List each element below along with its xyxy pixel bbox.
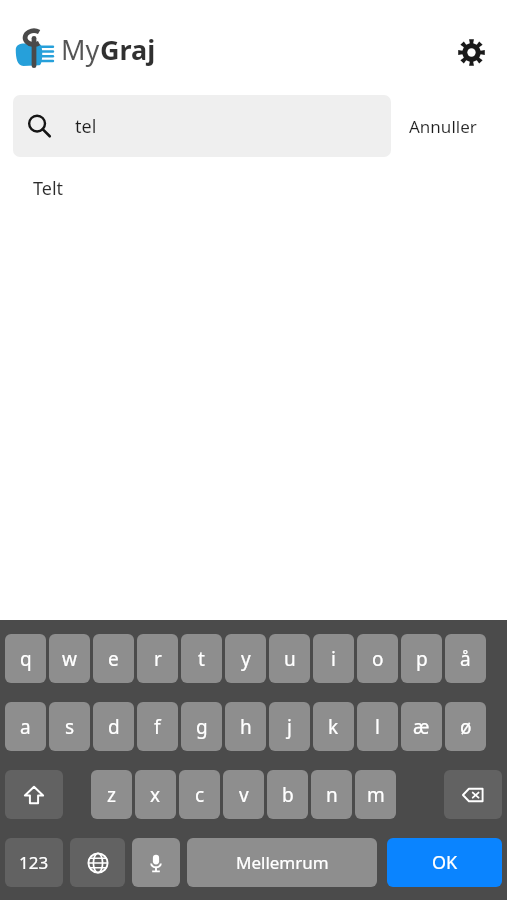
staticText: My [61,31,100,68]
staticText: b [282,782,294,808]
staticText: j [287,714,292,740]
staticText: 123 [19,851,49,874]
button[interactable]: g [181,702,222,751]
button[interactable]: d [93,702,134,751]
staticText: e [108,646,119,672]
staticText: u [284,646,296,672]
staticText: å [460,646,471,672]
staticText: i [331,646,336,672]
button[interactable]: Voice input [132,838,180,887]
button[interactable]: Telt [0,160,507,216]
button[interactable]: tel [13,95,391,157]
staticText: tel [75,114,97,139]
button[interactable]: l [357,702,398,751]
button[interactable]: c [179,770,220,819]
button[interactable]: o [357,634,398,683]
button[interactable]: å [445,634,486,683]
button[interactable]: p [401,634,442,683]
staticText: Graj [100,31,156,68]
button[interactable]: n [311,770,352,819]
button[interactable]: OK [387,838,502,887]
button[interactable]: f [137,702,178,751]
button[interactable]: y [225,634,266,683]
staticText: z [107,782,116,808]
staticText: w [62,646,77,672]
button[interactable]: ø [445,702,486,751]
button[interactable]: w [49,634,90,683]
button[interactable]: Settings [453,34,489,70]
button[interactable]: i [313,634,354,683]
button[interactable]: b [267,770,308,819]
button[interactable]: Backspace [444,770,502,819]
button[interactable]: Shift [5,770,63,819]
button[interactable]: k [313,702,354,751]
button[interactable]: u [269,634,310,683]
button[interactable]: x [135,770,176,819]
staticText: v [239,782,249,808]
button[interactable]: m [355,770,396,819]
staticText: k [328,714,339,740]
staticText: æ [413,714,430,740]
staticText: f [154,714,161,740]
staticText: l [375,714,380,740]
staticText: h [240,714,252,740]
button[interactable]: s [49,702,90,751]
button[interactable]: Mellemrum [187,838,377,887]
button[interactable]: æ [401,702,442,751]
button[interactable]: v [223,770,264,819]
staticText: Mellemrum [236,851,329,874]
button[interactable]: t [181,634,222,683]
staticText: Telt [33,176,64,201]
button[interactable]: e [93,634,134,683]
button[interactable]: a [5,702,46,751]
button[interactable]: h [225,702,266,751]
button[interactable]: r [137,634,178,683]
staticText: t [198,646,205,672]
staticText: x [150,782,161,808]
button[interactable]: Annuller [407,107,479,146]
staticText: d [108,714,120,740]
button[interactable]: z [91,770,132,819]
button[interactable]: Change language [70,838,125,887]
staticText: a [20,714,31,740]
staticText: s [65,714,75,740]
staticText: o [372,646,384,672]
staticText: p [416,646,428,672]
button[interactable]: 123 [5,838,63,887]
staticText: Annuller [409,115,477,138]
staticText: m [367,782,385,808]
staticText: c [195,782,205,808]
button[interactable]: q [5,634,46,683]
staticText: r [154,646,162,672]
staticText: n [326,782,338,808]
button[interactable]: j [269,702,310,751]
staticText: g [196,714,208,740]
staticText: q [20,646,32,672]
staticText: y [241,646,251,672]
staticText: ø [460,714,472,740]
staticText: OK [432,850,458,875]
